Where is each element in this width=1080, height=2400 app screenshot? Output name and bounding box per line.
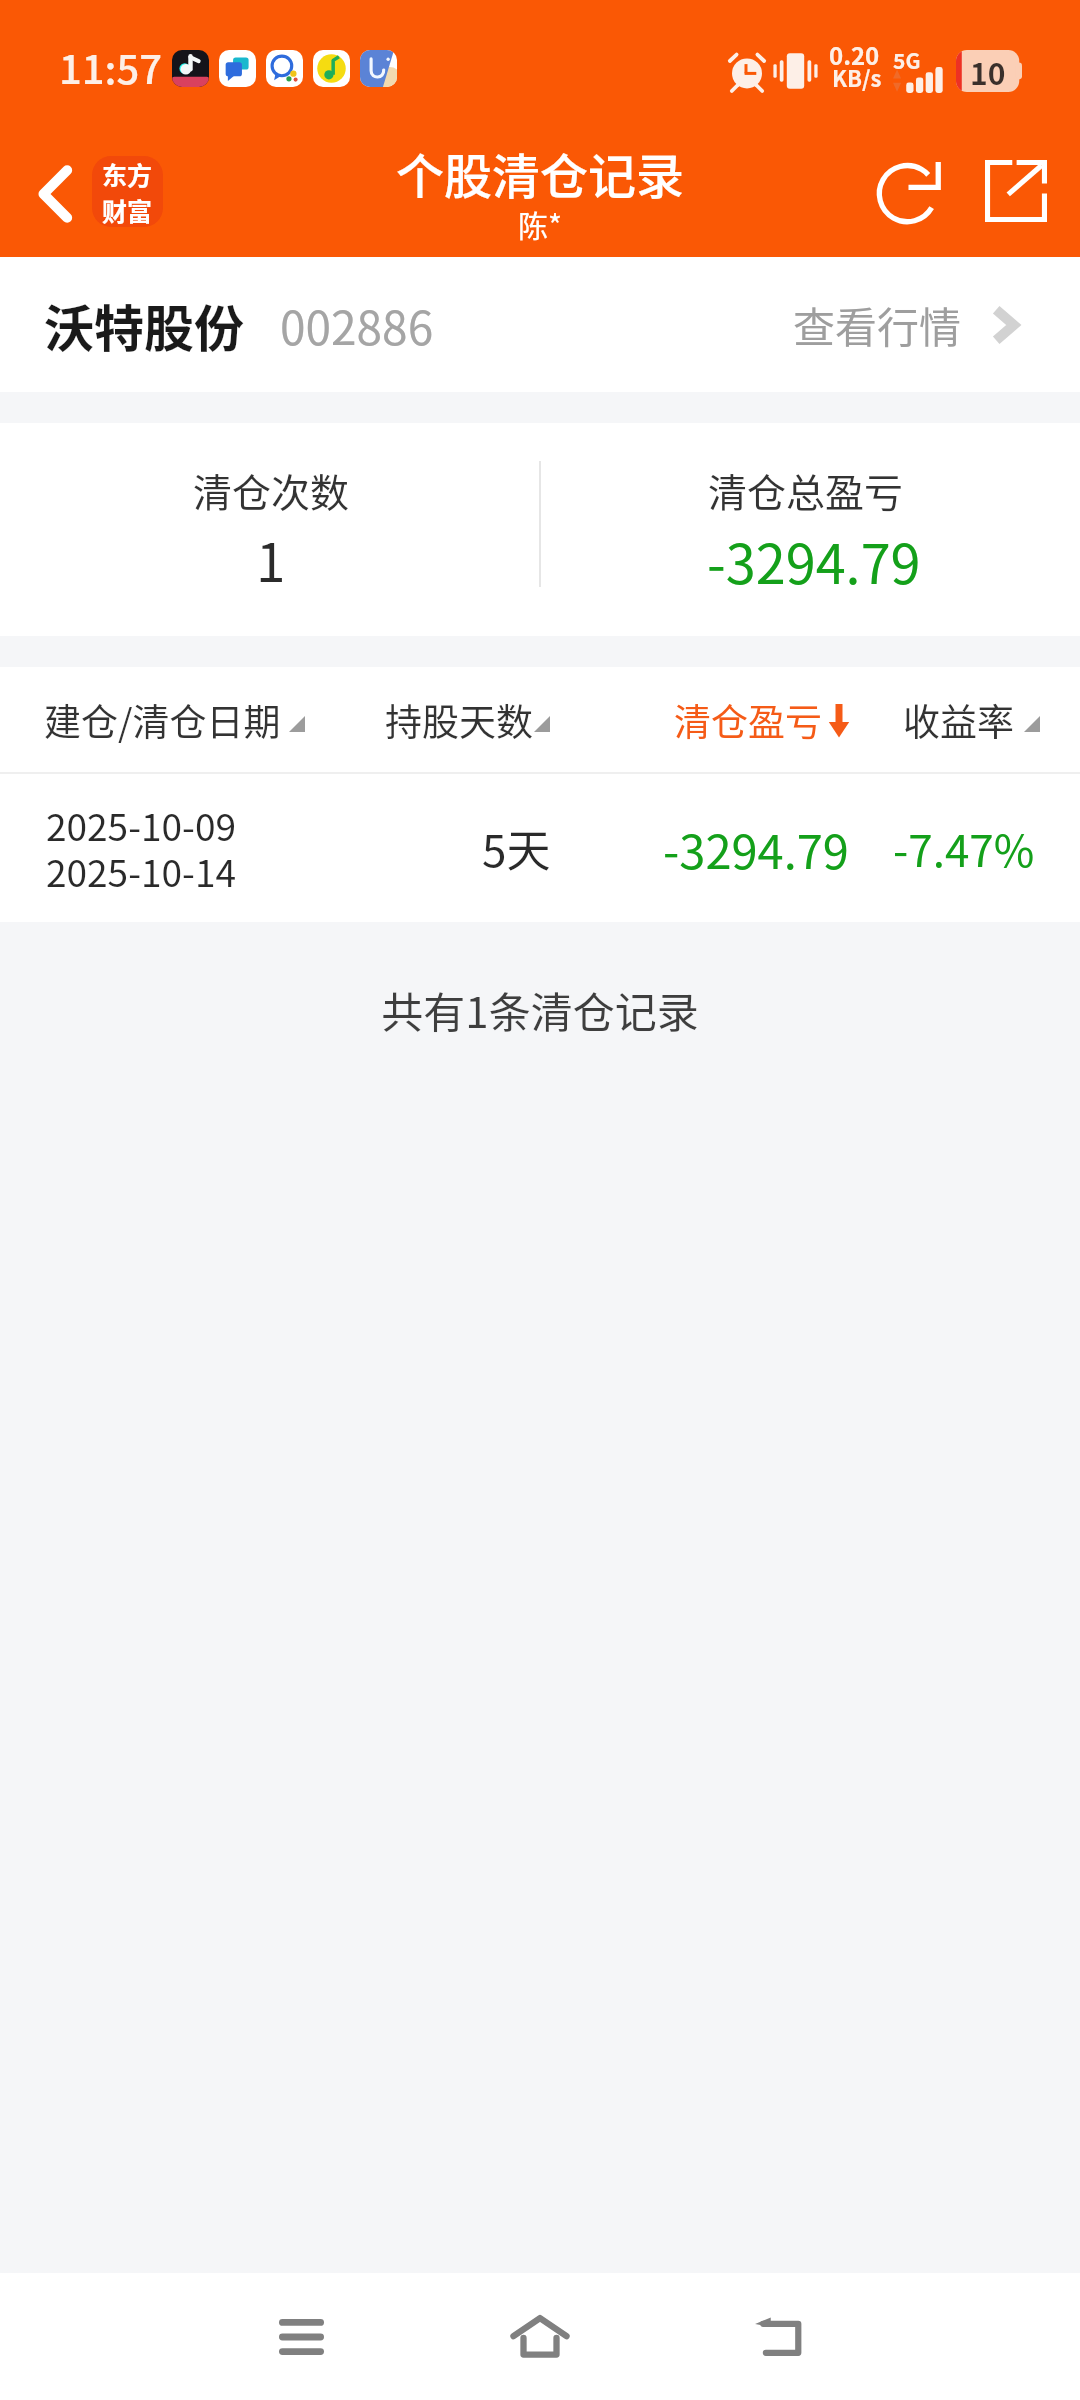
staticText: 查看行情 bbox=[793, 294, 962, 355]
button[interactable]: 查看行情 bbox=[793, 257, 1036, 392]
staticText: 5G bbox=[893, 45, 921, 75]
staticText: 1 bbox=[256, 521, 286, 598]
button[interactable]: East Money bbox=[92, 156, 163, 227]
staticText: 11:57 bbox=[59, 38, 163, 96]
button[interactable]: Back bbox=[716, 2273, 846, 2400]
staticText: 财富 bbox=[102, 192, 153, 227]
button[interactable]: 沃特股份 bbox=[0, 257, 1080, 392]
staticText: KB/s bbox=[832, 61, 882, 93]
staticText: 5天 bbox=[482, 816, 551, 880]
staticText: 收益率 bbox=[903, 693, 1014, 747]
button[interactable]: Share bbox=[974, 147, 1068, 241]
staticText: 个股清仓记录 bbox=[0, 138, 1080, 208]
button[interactable]: 清仓盈亏 bbox=[674, 693, 856, 747]
staticText: 清仓盈亏 bbox=[674, 693, 822, 747]
staticText: 清仓总盈亏 bbox=[708, 462, 904, 518]
staticText: 沃特股份 bbox=[44, 289, 244, 361]
staticText: 清仓次数 bbox=[193, 462, 350, 518]
staticText: 陈* bbox=[0, 202, 1080, 245]
button[interactable]: Refresh bbox=[874, 144, 974, 244]
staticText: 2025-10-09 2025-10-14 bbox=[46, 798, 236, 898]
button[interactable]: 2025-10-09 2025-10-14 bbox=[0, 774, 1080, 922]
staticText: 共有1条清仓记录 bbox=[0, 979, 1080, 1040]
button[interactable]: Recents bbox=[236, 2273, 366, 2400]
staticText: -3294.79 bbox=[707, 521, 921, 599]
staticText: -3294.79 bbox=[663, 814, 849, 882]
button[interactable]: 收益率 bbox=[903, 693, 1040, 747]
button[interactable]: Home bbox=[475, 2273, 605, 2400]
button[interactable]: 建仓/清仓日期 bbox=[44, 693, 305, 747]
staticText: 建仓/清仓日期 bbox=[44, 693, 281, 747]
staticText: 持股天数 bbox=[385, 693, 533, 747]
staticText: 002886 bbox=[280, 292, 434, 359]
staticText: 0.20 bbox=[829, 37, 880, 72]
staticText: 东方 bbox=[102, 156, 153, 192]
button[interactable]: 持股天数 bbox=[385, 693, 550, 747]
staticText: 10 bbox=[970, 50, 1006, 92]
staticText: -7.47% bbox=[893, 816, 1035, 880]
button[interactable]: Back bbox=[13, 152, 97, 236]
